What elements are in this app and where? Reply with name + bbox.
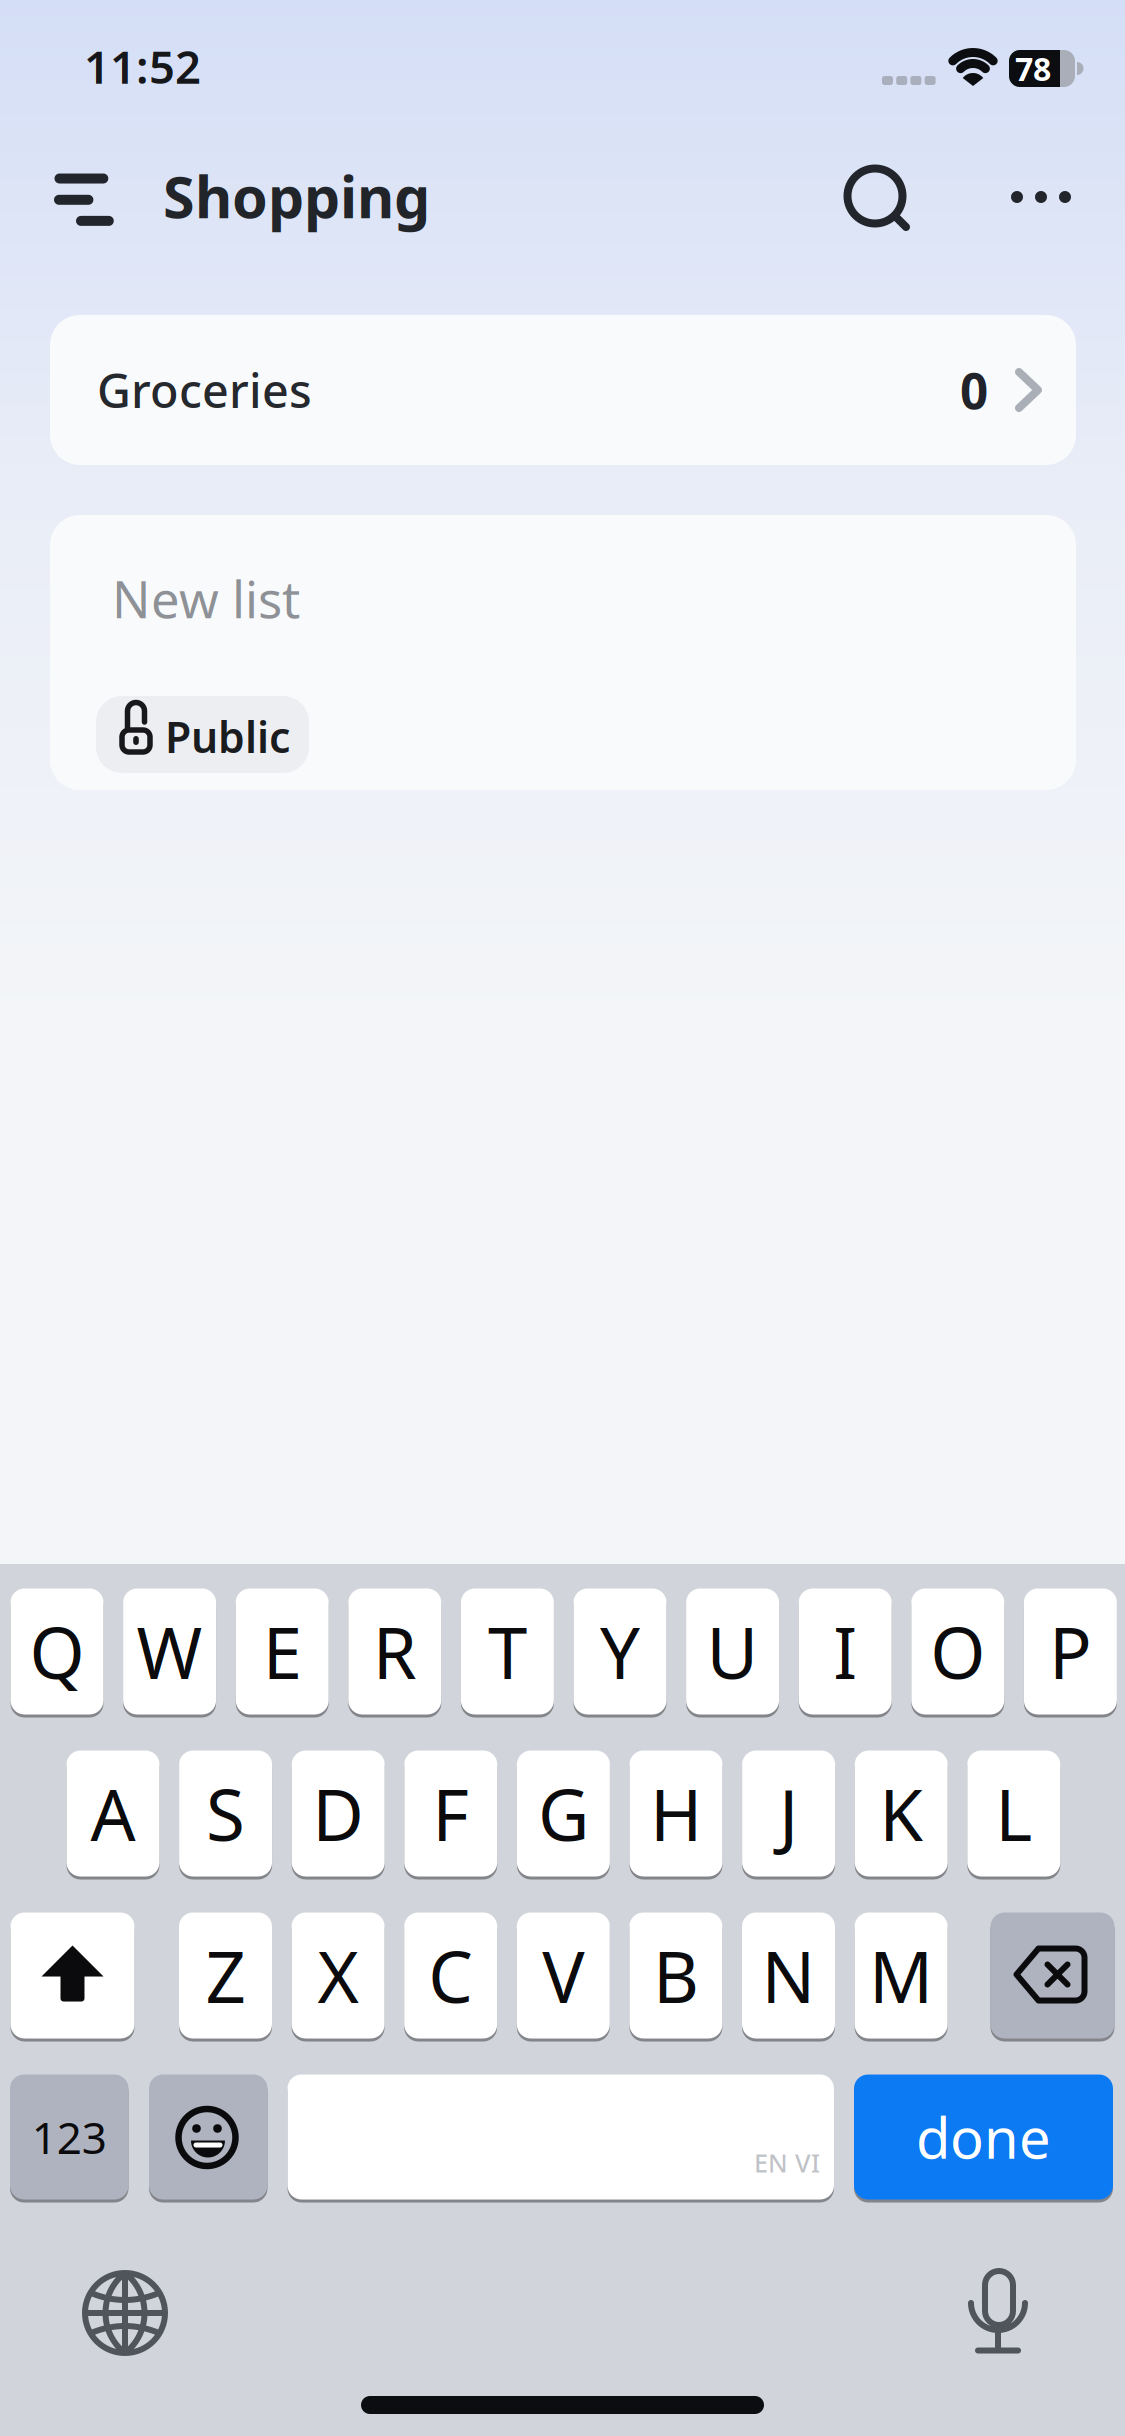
button[interactable]: K (855, 1749, 948, 1878)
button[interactable]: Q (10, 1587, 103, 1716)
button[interactable]: A (66, 1749, 159, 1878)
staticText: D (312, 1767, 364, 1860)
staticText: New list (112, 565, 300, 632)
button[interactable]: Search (842, 162, 914, 234)
button[interactable]: More (994, 160, 1088, 232)
staticText: L (995, 1767, 1032, 1860)
button[interactable]: C (404, 1911, 497, 2040)
button[interactable]: E (236, 1587, 329, 1716)
staticText: Z (205, 1929, 245, 2022)
button[interactable]: U (686, 1587, 779, 1716)
button[interactable]: done (854, 2073, 1113, 2201)
staticText: K (879, 1767, 923, 1860)
button[interactable]: H (629, 1749, 722, 1878)
staticText: N (761, 1929, 815, 2022)
button[interactable]: B (629, 1911, 722, 2040)
button[interactable]: V (517, 1911, 610, 2040)
staticText: 0 (960, 357, 988, 423)
button[interactable]: Space (287, 2073, 834, 2201)
button[interactable]: Dictate (948, 2255, 1048, 2355)
button[interactable]: N (742, 1911, 835, 2040)
button[interactable]: D (292, 1749, 385, 1878)
staticText: EN VI (754, 2146, 820, 2179)
button[interactable]: J (742, 1749, 835, 1878)
staticText: S (206, 1767, 245, 1860)
button[interactable]: G (517, 1749, 610, 1878)
button[interactable]: Next keyboard (75, 2263, 175, 2363)
staticText: Public (165, 708, 290, 765)
staticText: V (542, 1929, 584, 2022)
staticText: Groceries (97, 359, 312, 421)
staticText: M (869, 1929, 933, 2022)
staticText: Q (29, 1605, 84, 1698)
staticText: C (428, 1929, 473, 2022)
button[interactable]: Groceries (50, 315, 1076, 465)
staticText: 123 (32, 2108, 107, 2166)
button[interactable]: Emoji (149, 2073, 267, 2201)
staticText: X (318, 1929, 359, 2022)
staticText: W (137, 1605, 203, 1698)
staticText: O (930, 1605, 985, 1698)
staticText: P (1049, 1605, 1092, 1698)
button[interactable]: L (967, 1749, 1060, 1878)
staticText: 11:52 (84, 36, 201, 96)
button[interactable]: F (404, 1749, 497, 1878)
button[interactable]: Y (573, 1587, 666, 1716)
button[interactable]: New list (50, 515, 1076, 790)
button[interactable]: Shift (10, 1911, 134, 2040)
button[interactable]: Delete (990, 1911, 1114, 2040)
staticText: Y (600, 1605, 640, 1698)
staticText: R (373, 1605, 417, 1698)
button[interactable]: T (461, 1587, 554, 1716)
button[interactable]: I (799, 1587, 892, 1716)
staticText: done (916, 2100, 1051, 2174)
staticText: I (833, 1605, 857, 1698)
staticText: B (653, 1929, 699, 2022)
button[interactable]: Numbers (10, 2073, 128, 2201)
staticText: H (650, 1767, 702, 1860)
staticText: Shopping (163, 158, 430, 234)
staticText: F (432, 1767, 469, 1860)
button[interactable]: W (123, 1587, 216, 1716)
button[interactable]: S (179, 1749, 272, 1878)
button[interactable]: X (292, 1911, 385, 2040)
staticText: A (90, 1767, 135, 1860)
button[interactable]: Public (96, 696, 309, 773)
button[interactable]: P (1024, 1587, 1117, 1716)
staticText: T (488, 1605, 527, 1698)
staticText: J (779, 1767, 798, 1860)
button[interactable]: R (348, 1587, 441, 1716)
button[interactable]: Menu (47, 168, 119, 232)
staticText: E (263, 1605, 302, 1698)
staticText: U (707, 1605, 759, 1698)
button[interactable]: Z (179, 1911, 272, 2040)
button[interactable]: M (855, 1911, 948, 2040)
button[interactable]: O (911, 1587, 1004, 1716)
staticText: 78 (1015, 47, 1051, 90)
staticText: G (538, 1767, 589, 1860)
